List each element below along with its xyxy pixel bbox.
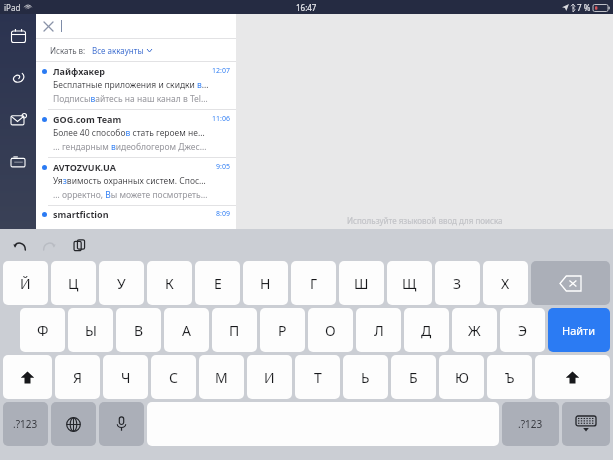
button[interactable]: Ю xyxy=(439,355,484,399)
staticText: З xyxy=(453,274,462,293)
staticText: У xyxy=(117,274,126,293)
button[interactable]: Change language xyxy=(51,402,96,446)
button[interactable]: Н xyxy=(243,261,288,305)
staticText: Лайфхакер xyxy=(53,65,212,77)
button[interactable]: Clear search xyxy=(36,14,236,38)
staticText: Н xyxy=(260,274,271,293)
button[interactable]: О xyxy=(308,308,353,352)
button[interactable]: М xyxy=(199,355,244,399)
staticText: И xyxy=(264,368,275,387)
staticText: К xyxy=(165,274,174,293)
button[interactable]: Т xyxy=(295,355,340,399)
staticText: Л xyxy=(374,321,384,340)
staticText: Г xyxy=(310,274,318,293)
button[interactable]: Ч xyxy=(103,355,148,399)
button[interactable]: GOG.com Team xyxy=(36,110,236,157)
staticText: С xyxy=(169,368,178,387)
button[interactable]: Ш xyxy=(339,261,384,305)
button[interactable]: Redo xyxy=(40,236,58,254)
staticText: smartfiction xyxy=(53,208,216,220)
staticText: Ц xyxy=(68,274,79,293)
staticText: 11:06 xyxy=(212,114,230,124)
button[interactable]: Numbers xyxy=(3,402,48,446)
button[interactable]: Лайфхакер xyxy=(36,62,236,109)
button[interactable]: С xyxy=(151,355,196,399)
staticText: Е xyxy=(214,274,222,293)
button[interactable]: И xyxy=(247,355,292,399)
staticText: Ж xyxy=(468,321,481,340)
button[interactable]: В xyxy=(116,308,161,352)
staticText: Т xyxy=(314,368,322,387)
button[interactable]: З xyxy=(435,261,480,305)
staticText: О xyxy=(325,321,336,340)
button[interactable]: Hide keyboard xyxy=(562,402,610,446)
button[interactable]: Ъ xyxy=(487,355,532,399)
staticText: Бесплатные приложения и скидки в… xyxy=(53,79,209,91)
button[interactable]: Л xyxy=(356,308,401,352)
button[interactable]: А xyxy=(164,308,209,352)
staticText: Р xyxy=(278,321,287,340)
button[interactable]: Numbers xyxy=(502,402,559,446)
button[interactable]: П xyxy=(212,308,257,352)
button[interactable]: Й xyxy=(3,261,48,305)
button[interactable]: Г xyxy=(291,261,336,305)
staticText: Ъ xyxy=(505,368,515,387)
staticText: 12:07 xyxy=(212,66,230,76)
staticText: iPad xyxy=(4,2,21,13)
staticText: 9:05 xyxy=(216,162,230,172)
button[interactable]: Р xyxy=(260,308,305,352)
button[interactable]: Undo xyxy=(10,236,28,254)
staticText: Ф xyxy=(37,321,49,340)
staticText: Я xyxy=(73,368,82,387)
button[interactable]: Найти xyxy=(548,308,610,352)
button[interactable]: AVTOZVUK.UA xyxy=(36,158,236,205)
staticText: В xyxy=(134,321,144,340)
button[interactable]: Б xyxy=(391,355,436,399)
button[interactable]: Unread mail xyxy=(6,108,30,132)
staticText: … орректно, Вы можете посмотреть… xyxy=(53,189,208,201)
button[interactable]: Ы xyxy=(68,308,113,352)
staticText: AVTOZVUK.UA xyxy=(53,161,216,173)
button[interactable]: Calendar xyxy=(6,24,30,48)
button[interactable]: Shift xyxy=(3,355,52,399)
button[interactable]: Э xyxy=(500,308,545,352)
button[interactable]: Я xyxy=(55,355,100,399)
button[interactable]: Dictation xyxy=(99,402,144,446)
button[interactable]: Shift xyxy=(535,355,610,399)
staticText: А xyxy=(182,321,191,340)
other: Clear search xyxy=(44,22,53,31)
staticText: Й xyxy=(20,274,31,293)
staticText: … гендарным видеоблогером Джес… xyxy=(53,141,207,153)
staticText: GOG.com Team xyxy=(53,113,212,125)
staticText: Ч xyxy=(121,368,131,387)
staticText: 7 % xyxy=(577,2,591,13)
button[interactable]: Paste xyxy=(70,236,88,254)
staticText: Д xyxy=(421,321,432,340)
staticText: М xyxy=(215,368,228,387)
staticText: Щ xyxy=(402,274,417,293)
button[interactable]: Ь xyxy=(343,355,388,399)
button[interactable]: Ф xyxy=(20,308,65,352)
staticText: 8:09 xyxy=(216,209,230,219)
button[interactable]: Д xyxy=(404,308,449,352)
staticText: .?123 xyxy=(13,417,38,431)
button[interactable]: У xyxy=(99,261,144,305)
button[interactable]: К xyxy=(147,261,192,305)
button[interactable]: Attachments xyxy=(6,66,30,90)
button[interactable]: Folders xyxy=(6,150,30,174)
button[interactable]: Ж xyxy=(452,308,497,352)
button[interactable]: Х xyxy=(483,261,528,305)
button[interactable]: Ц xyxy=(51,261,96,305)
staticText: Подписывайтесь на наш канал в Tel… xyxy=(53,93,208,105)
staticText: Ы xyxy=(85,321,97,340)
button[interactable]: smartfiction xyxy=(36,206,236,222)
staticText: Все аккаунты xyxy=(92,45,144,56)
button[interactable]: Backspace xyxy=(531,261,610,305)
button[interactable]: Щ xyxy=(387,261,432,305)
staticText: Б xyxy=(409,368,418,387)
staticText: Найти xyxy=(562,323,596,338)
button[interactable]: Искать в: xyxy=(36,39,236,61)
button[interactable]: Е xyxy=(195,261,240,305)
staticText: Ю xyxy=(455,368,469,387)
